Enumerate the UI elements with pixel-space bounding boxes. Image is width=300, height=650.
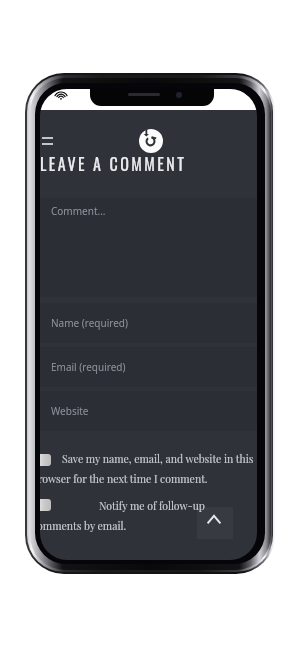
staticText: Comment... [51,204,106,218]
staticText: LEAVE A COMMENT [40,152,187,176]
button[interactable]: Email (required) [40,347,257,387]
button[interactable]: Home [139,126,163,153]
button[interactable]: Notify me of follow-up comments by email [40,499,51,511]
button[interactable]: Save my name, email, and website [40,454,51,466]
button[interactable]: Comment... [40,198,257,297]
staticText: Notify me of follow-up comments by email… [40,499,255,533]
button[interactable]: Name (required) [40,303,257,343]
button[interactable]: Scroll to top [197,507,233,539]
staticText: Website [51,404,89,418]
button[interactable]: Open menu [40,131,59,151]
button[interactable]: Website [40,391,257,431]
staticText: Email (required) [51,360,126,374]
staticText: Save my name, email, and website in this… [40,452,255,486]
staticText: Name (required) [51,316,128,330]
